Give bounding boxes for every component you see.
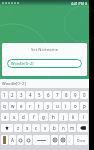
button[interactable]: 3 bbox=[17, 91, 25, 99]
staticText: Done bbox=[77, 138, 86, 143]
button[interactable]: 9 bbox=[71, 91, 79, 99]
button[interactable]: Emoji bbox=[17, 135, 24, 145]
button[interactable]: p bbox=[80, 102, 88, 110]
staticText: p bbox=[83, 103, 86, 109]
button[interactable]: Emoticon bbox=[59, 135, 66, 145]
staticText: A bbox=[11, 137, 14, 143]
staticText: 0 bbox=[83, 92, 86, 98]
button[interactable]: y bbox=[44, 102, 52, 110]
button[interactable]: q bbox=[1, 102, 8, 110]
button[interactable]: Shift bbox=[1, 124, 13, 132]
staticText: 2 bbox=[11, 92, 14, 98]
staticText: u bbox=[56, 103, 59, 109]
button[interactable]: m bbox=[68, 124, 76, 132]
staticText: Woodle[0~2] bbox=[2, 81, 26, 86]
button[interactable]: Stickers bbox=[1, 135, 8, 145]
button[interactable]: h bbox=[49, 113, 58, 121]
button[interactable]: 6 bbox=[44, 91, 52, 99]
button[interactable]: . bbox=[67, 135, 73, 145]
staticText: q bbox=[3, 103, 6, 109]
button[interactable]: s bbox=[10, 113, 18, 121]
button[interactable]: x bbox=[23, 124, 31, 132]
button[interactable]: 8 bbox=[62, 91, 70, 99]
staticText: 4:41 PM bbox=[71, 1, 84, 6]
staticText: a bbox=[4, 114, 7, 120]
staticText: 5 bbox=[38, 92, 41, 98]
staticText: Set Nickname bbox=[2, 47, 87, 53]
button[interactable]: Woodle[0~2] bbox=[11, 59, 78, 68]
button[interactable]: 0 bbox=[80, 91, 88, 99]
button[interactable]: 2 bbox=[9, 91, 16, 99]
staticText: e bbox=[20, 103, 23, 109]
staticText: k bbox=[72, 114, 75, 120]
staticText: l bbox=[83, 114, 85, 120]
button[interactable]: t bbox=[35, 102, 43, 110]
staticText: 8 bbox=[65, 92, 68, 98]
button[interactable]: l bbox=[79, 113, 88, 121]
staticText: r bbox=[29, 103, 31, 109]
button[interactable]: 1 bbox=[1, 91, 8, 99]
staticText: s bbox=[13, 114, 16, 120]
button[interactable]: e bbox=[17, 102, 25, 110]
staticText: w bbox=[11, 103, 15, 109]
button[interactable]: A bbox=[9, 135, 16, 145]
button[interactable]: 7 bbox=[53, 91, 61, 99]
staticText: . bbox=[69, 137, 71, 143]
button[interactable]: 5 bbox=[35, 91, 43, 99]
button[interactable]: Backspace bbox=[77, 124, 88, 132]
staticText: o bbox=[74, 103, 77, 109]
staticText: y bbox=[47, 103, 50, 109]
button[interactable]: c bbox=[32, 124, 40, 132]
staticText: 4 bbox=[29, 92, 32, 98]
staticText: j bbox=[63, 114, 65, 120]
staticText: 6 bbox=[47, 92, 50, 98]
staticText: 7 bbox=[56, 92, 59, 98]
button[interactable]: Woodle[0~2] bbox=[2, 79, 87, 88]
staticText: x bbox=[26, 125, 29, 131]
button[interactable]: Voice input bbox=[51, 135, 58, 145]
button[interactable]: r bbox=[26, 102, 34, 110]
button[interactable]: d bbox=[19, 113, 28, 121]
staticText: v bbox=[44, 125, 47, 131]
staticText: d bbox=[22, 114, 25, 120]
button[interactable]: b bbox=[50, 124, 58, 132]
staticText: 1 bbox=[3, 92, 6, 98]
button[interactable]: a bbox=[1, 113, 9, 121]
button[interactable]: Space bbox=[33, 135, 50, 145]
button[interactable]: u bbox=[53, 102, 61, 110]
staticText: g bbox=[42, 114, 45, 120]
staticText: Woodle[0~2] bbox=[11, 61, 34, 66]
staticText: n bbox=[62, 125, 65, 131]
staticText: f bbox=[33, 114, 35, 120]
staticText: 9 bbox=[74, 92, 77, 98]
staticText: c bbox=[35, 125, 38, 131]
button[interactable]: k bbox=[69, 113, 78, 121]
button[interactable]: v bbox=[41, 124, 49, 132]
staticText: b bbox=[53, 125, 56, 131]
button[interactable]: g bbox=[39, 113, 48, 121]
button[interactable]: 4 bbox=[26, 91, 34, 99]
button[interactable]: n bbox=[59, 124, 67, 132]
button[interactable]: i bbox=[62, 102, 70, 110]
button[interactable]: z bbox=[14, 124, 22, 132]
button[interactable]: w bbox=[9, 102, 16, 110]
staticText: h bbox=[52, 114, 55, 120]
button[interactable]: o bbox=[71, 102, 79, 110]
staticText: i bbox=[65, 103, 67, 109]
button[interactable]: f bbox=[29, 113, 38, 121]
staticText: z bbox=[17, 125, 20, 131]
staticText: m bbox=[70, 125, 75, 131]
button[interactable]: j bbox=[59, 113, 68, 121]
staticText: t bbox=[38, 103, 40, 109]
button[interactable]: Settings bbox=[25, 135, 32, 145]
staticText: 3 bbox=[20, 92, 23, 98]
button[interactable]: Done bbox=[74, 135, 88, 145]
